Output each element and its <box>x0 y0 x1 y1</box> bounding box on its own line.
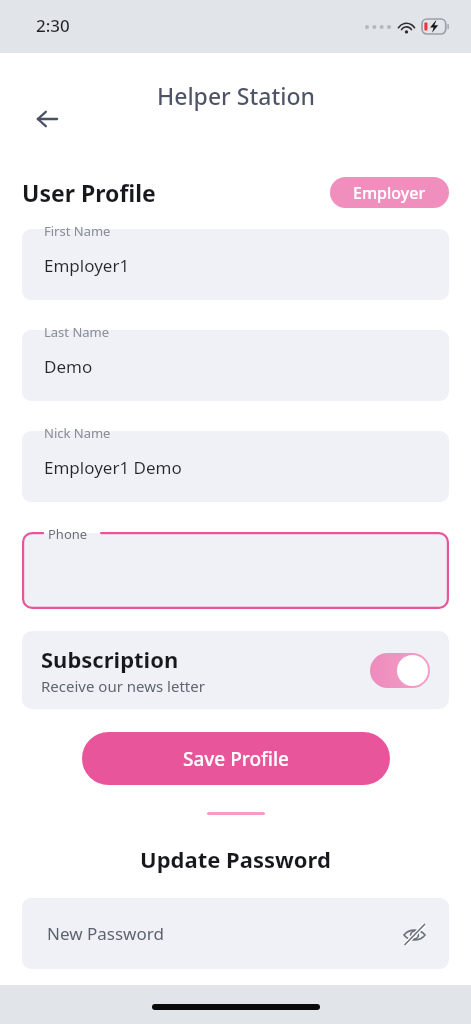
button[interactable]: Back <box>26 98 68 140</box>
button[interactable]: Confirm Password <box>22 992 449 1024</box>
staticText: Demo <box>44 355 93 378</box>
staticText: Last Name <box>44 323 110 341</box>
staticText: Employer <box>353 182 426 204</box>
staticText: Employer1 <box>44 254 130 277</box>
staticText: Helper Station <box>157 80 315 111</box>
staticText: New Password <box>47 922 164 945</box>
staticText: Receive our news letter <box>41 676 205 696</box>
button[interactable]: New Password <box>22 898 449 969</box>
staticText: Update Password <box>0 844 471 874</box>
button[interactable]: First Name <box>22 222 449 300</box>
staticText: Phone <box>48 525 88 543</box>
button[interactable]: Employer <box>330 177 449 208</box>
staticText: Subscription <box>41 644 179 674</box>
staticText: User Profile <box>22 177 156 208</box>
staticText: 2:30 <box>36 14 70 37</box>
staticText: First Name <box>44 222 111 240</box>
button[interactable]: Phone <box>22 525 449 609</box>
button[interactable]: Save Profile <box>82 732 390 785</box>
button[interactable]: Subscription <box>22 631 449 709</box>
staticText: Confirm Password <box>47 997 193 1020</box>
button[interactable]: Last Name <box>22 323 449 401</box>
staticText: Employer1 Demo <box>44 456 182 479</box>
button[interactable]: Nick Name <box>22 424 449 502</box>
staticText: Save Profile <box>183 746 289 772</box>
button[interactable]: Subscription toggle <box>370 653 430 688</box>
staticText: Nick Name <box>44 424 111 442</box>
button[interactable]: Toggle password visibility <box>397 917 431 951</box>
